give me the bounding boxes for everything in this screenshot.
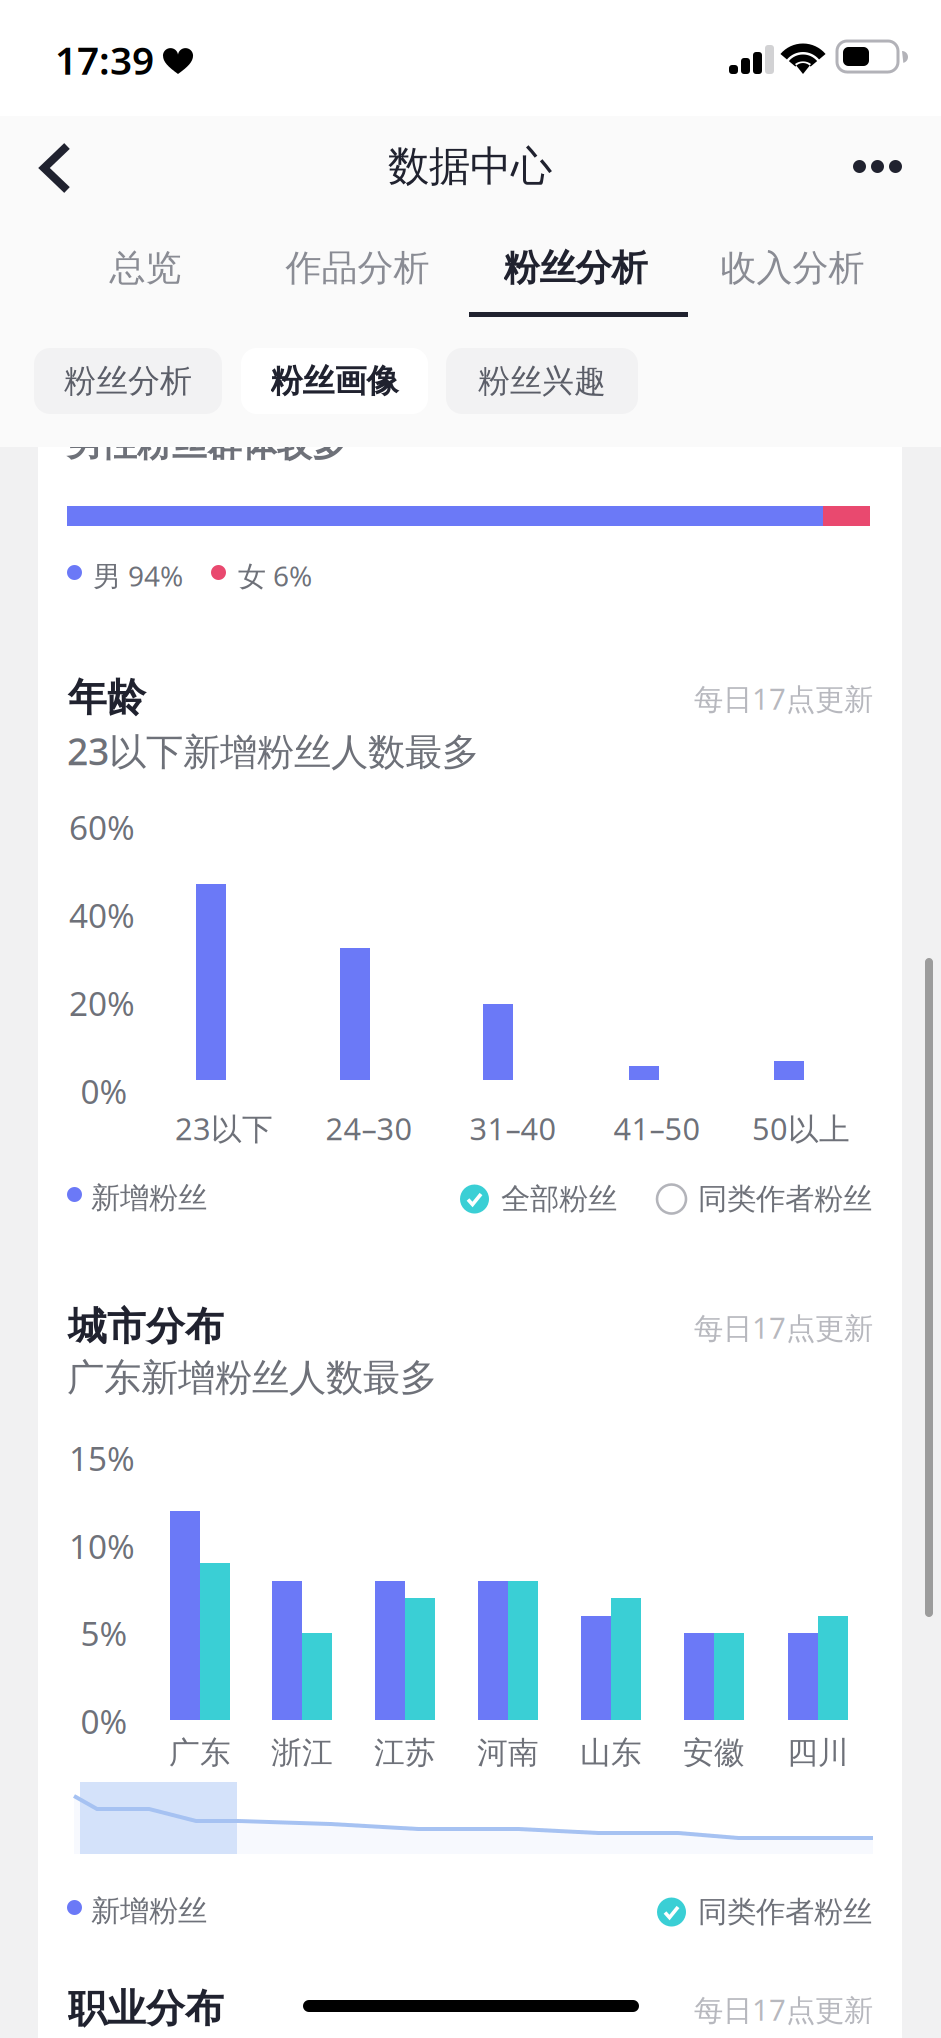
staticText: 四川	[787, 1734, 849, 1772]
staticText: 总览	[109, 246, 181, 290]
button[interactable]: 同类作者粉丝	[657, 1181, 872, 1217]
staticText: 粉丝分析	[64, 361, 192, 401]
staticText: 每日17点更新	[694, 1990, 873, 2029]
staticText: 新增粉丝	[91, 1893, 207, 1929]
staticText: 41–50	[613, 1108, 700, 1149]
staticText: 31–40	[469, 1108, 556, 1149]
staticText: 0%	[80, 1069, 127, 1113]
staticText: 5%	[80, 1611, 127, 1655]
staticText: 粉丝分析	[503, 246, 647, 290]
staticText: 同类作者粉丝	[698, 1181, 872, 1217]
staticText: 23以下	[175, 1108, 273, 1149]
staticText: 23以下新增粉丝人数最多	[67, 726, 479, 776]
staticText: 安徽	[683, 1734, 745, 1772]
staticText: 数据中心	[388, 141, 552, 192]
staticText: 广东	[169, 1734, 231, 1772]
button[interactable]: 粉丝分析	[475, 226, 675, 310]
staticText: 60%	[69, 805, 135, 849]
button[interactable]: 更多	[841, 120, 941, 214]
staticText: 粉丝画像	[270, 361, 398, 401]
staticText: 20%	[69, 981, 135, 1025]
button[interactable]: 返回	[0, 120, 102, 214]
button[interactable]: 同类作者粉丝	[657, 1894, 872, 1930]
staticText: 浙江	[271, 1734, 333, 1772]
staticText: 同类作者粉丝	[698, 1894, 872, 1930]
button[interactable]: 作品分析	[257, 226, 457, 310]
staticText: 17:39	[55, 34, 154, 85]
staticText: 广东新增粉丝人数最多	[67, 1355, 437, 1401]
button[interactable]: 收入分析	[692, 226, 892, 310]
staticText: 城市分布	[68, 1303, 224, 1350]
staticText: 0%	[80, 1699, 127, 1743]
staticText: 男 94%	[93, 557, 183, 594]
staticText: 全部粉丝	[501, 1181, 617, 1217]
button[interactable]: 粉丝分析	[34, 348, 222, 414]
staticText: 山东	[580, 1734, 642, 1772]
staticText: 新增粉丝	[91, 1180, 207, 1216]
staticText: 男性粉丝群体较多	[67, 423, 347, 466]
staticText: 40%	[69, 893, 135, 937]
staticText: 河南	[477, 1734, 539, 1772]
button[interactable]: 全部粉丝	[460, 1181, 617, 1217]
staticText: 每日17点更新	[694, 679, 873, 718]
staticText: 江苏	[374, 1734, 436, 1772]
button[interactable]: 粉丝画像	[241, 348, 428, 414]
button[interactable]: 总览	[45, 226, 245, 310]
staticText: 每日17点更新	[694, 1308, 873, 1347]
staticText: 24–30	[325, 1108, 412, 1149]
staticText: 职业分布	[68, 1985, 224, 2032]
staticText: 50以上	[752, 1108, 850, 1149]
staticText: 作品分析	[285, 246, 429, 290]
staticText: 女 6%	[238, 557, 312, 594]
staticText: 年龄	[68, 674, 146, 721]
staticText: 10%	[69, 1524, 135, 1568]
button[interactable]: 粉丝兴趣	[446, 348, 638, 414]
staticText: 收入分析	[720, 246, 864, 290]
staticText: 粉丝兴趣	[478, 361, 606, 401]
staticText: 15%	[69, 1436, 135, 1480]
